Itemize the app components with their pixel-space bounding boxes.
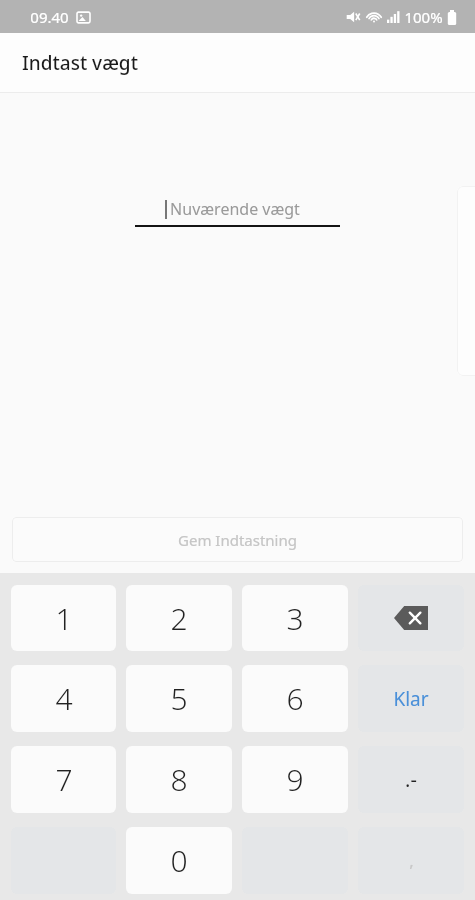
staticText: 9 — [286, 759, 304, 800]
button[interactable]: 2 — [126, 585, 232, 651]
button[interactable]: 1 — [11, 585, 116, 651]
staticText: Gem Indtastning — [178, 530, 297, 550]
button[interactable]: Klar — [358, 665, 464, 732]
staticText: 1 — [55, 598, 73, 639]
staticText: 3 — [286, 598, 304, 639]
button[interactable]: 4 — [11, 665, 116, 732]
staticText: 100% — [404, 7, 443, 27]
button[interactable]: 8 — [126, 746, 232, 813]
button[interactable]: 3 — [242, 585, 348, 651]
staticText: Indtast vægt — [22, 50, 138, 76]
staticText: 8 — [170, 759, 188, 800]
staticText: 6 — [286, 678, 304, 719]
staticText: 2 — [170, 598, 188, 639]
staticText: 5 — [170, 678, 188, 719]
staticText: , — [409, 849, 414, 872]
button[interactable]: 7 — [11, 746, 116, 813]
staticText: 0 — [170, 840, 188, 881]
staticText: 09.40 — [30, 7, 69, 27]
staticText: 7 — [55, 759, 73, 800]
button[interactable]: 0 — [126, 827, 232, 894]
button[interactable]: 5 — [126, 665, 232, 732]
staticText: Klar — [393, 686, 429, 712]
button[interactable]: 9 — [242, 746, 348, 813]
button[interactable]: Nuværende vægt — [135, 193, 340, 227]
button[interactable]: Gem Indtastning — [12, 517, 463, 562]
staticText: Nuværende vægt — [170, 198, 300, 220]
button[interactable]: 6 — [242, 665, 348, 732]
staticText: .- — [405, 766, 417, 793]
button[interactable]: .- — [358, 746, 464, 813]
staticText: 4 — [55, 678, 73, 719]
button[interactable]: Backspace — [358, 585, 464, 651]
